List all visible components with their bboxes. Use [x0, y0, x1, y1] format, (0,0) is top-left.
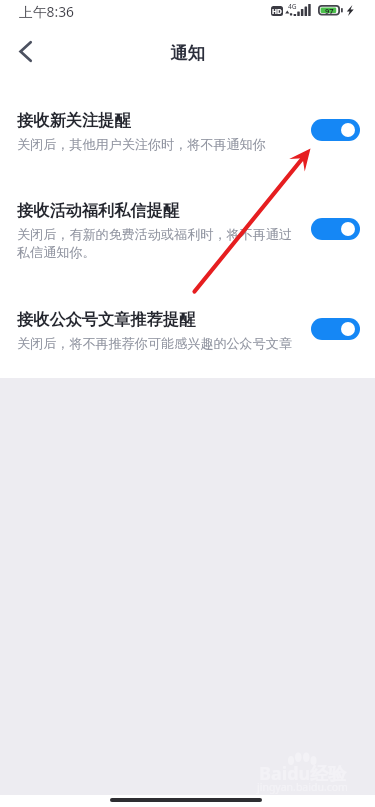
- staticText: HD: [272, 7, 282, 16]
- staticText: 97: [325, 6, 334, 16]
- staticText: 接收公众号文章推荐提醒: [17, 309, 196, 329]
- button[interactable]: Back: [0, 27, 48, 75]
- button[interactable]: Toggle: [311, 318, 360, 340]
- staticText: 接收新关注提醒: [17, 110, 131, 130]
- staticText: 关闭后，有新的免费活动或福利时，将不再通过私信通知你。: [17, 226, 297, 261]
- staticText: 关闭后，其他用户关注你时，将不再通知你: [17, 136, 266, 153]
- staticText: 接收活动福利私信提醒: [17, 200, 179, 220]
- staticText: 上午8:36: [19, 2, 74, 21]
- button[interactable]: Toggle: [311, 218, 360, 240]
- button[interactable]: 接收活动福利私信提醒: [0, 200, 375, 261]
- button[interactable]: Toggle: [311, 119, 360, 141]
- staticText: 关闭后，将不再推荐你可能感兴趣的公众号文章: [17, 335, 292, 352]
- button[interactable]: 接收公众号文章推荐提醒: [0, 309, 375, 352]
- staticText: 4G: [288, 2, 297, 11]
- button[interactable]: 接收新关注提醒: [0, 110, 375, 153]
- staticText: 通知: [170, 42, 205, 64]
